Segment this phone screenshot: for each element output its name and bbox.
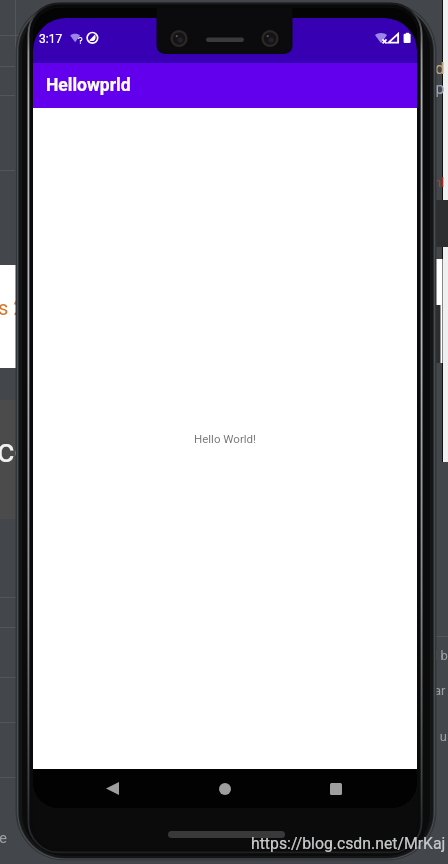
staticText: ar [434,683,446,698]
staticText: e [0,829,7,847]
staticText: Hello World! [194,432,257,445]
button[interactable]: Home [185,769,265,808]
staticText: s 2 [0,296,25,319]
button[interactable]: Hellowprld [33,63,417,108]
staticText: nl [434,175,445,190]
staticText: p [435,78,445,98]
staticText: d [435,58,445,78]
staticText: l b [434,648,448,663]
staticText: 3:17 [39,32,63,46]
staticText: , u [434,729,447,744]
button[interactable]: Recents [296,769,376,808]
button[interactable]: Back [72,769,152,808]
staticText: ce [0,431,32,470]
staticText: https://blog.csdn.net/MrKaj [251,834,446,853]
staticText: Hellowprld [46,75,131,96]
